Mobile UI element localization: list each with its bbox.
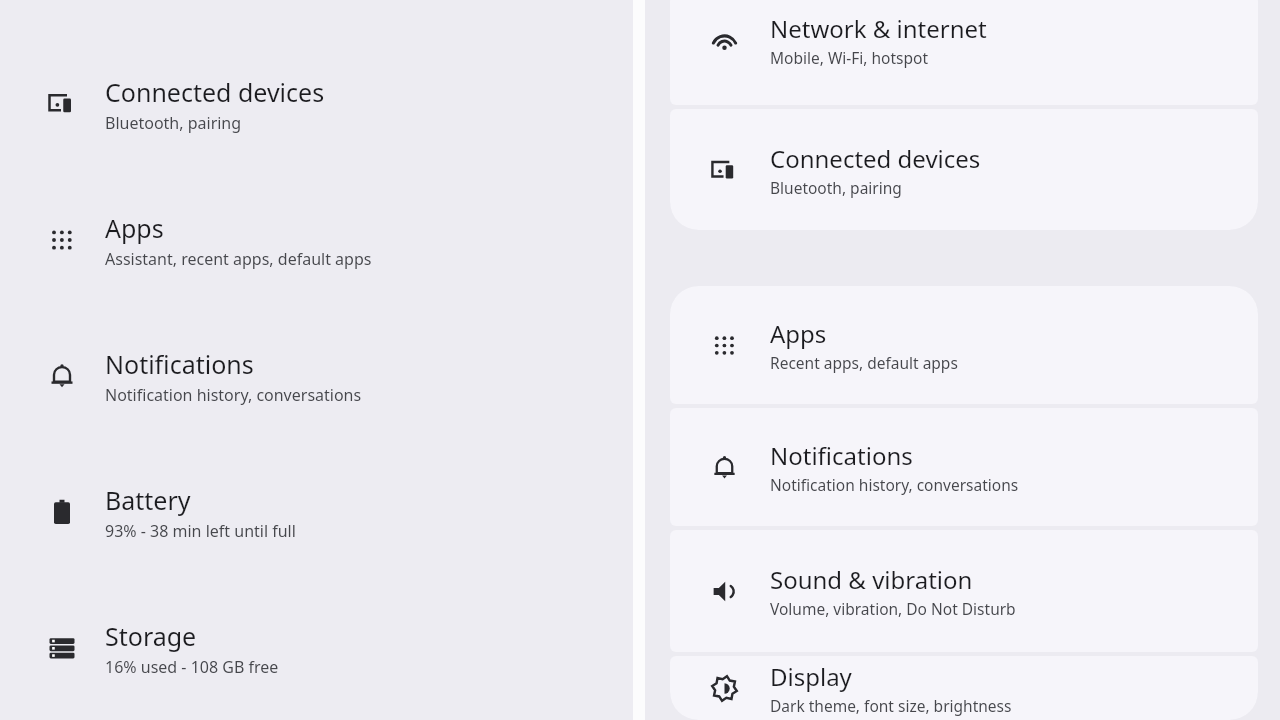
button[interactable]: Connected devices [0,62,633,146]
staticText: Bluetooth, pairing [770,177,902,198]
staticText: 16% used - 108 GB free [105,656,279,678]
staticText: Apps [105,211,164,245]
button[interactable]: Apps [0,198,633,282]
staticText: Mobile, Wi-Fi, hotspot [770,47,929,68]
staticText: Sound & vibration [770,563,973,596]
button[interactable]: Connected devices [670,109,1258,230]
button[interactable]: Apps [670,286,1258,404]
staticText: Network & internet [770,12,987,45]
staticText: Apps [770,317,827,350]
button[interactable]: Notifications [670,408,1258,526]
staticText: Connected devices [770,142,981,175]
staticText: Dark theme, font size, brightness [770,695,1012,716]
staticText: Notification history, conversations [105,384,362,406]
staticText: Notifications [770,439,913,472]
button[interactable]: Network & internet [670,0,1258,105]
staticText: Connected devices [105,75,325,109]
staticText: Volume, vibration, Do Not Disturb [770,598,1016,619]
staticText: Display [770,660,852,693]
staticText: Notifications [105,347,254,381]
button[interactable]: Sound & vibration [670,530,1258,652]
staticText: Assistant, recent apps, default apps [105,248,372,270]
button[interactable]: Battery [0,470,633,554]
staticText: Bluetooth, pairing [105,112,242,134]
staticText: Notification history, conversations [770,474,1019,495]
button[interactable]: Display [670,656,1258,720]
staticText: Storage [105,619,197,653]
staticText: 93% - 38 min left until full [105,520,296,542]
staticText: Recent apps, default apps [770,352,958,373]
button[interactable]: Storage [0,606,633,690]
button[interactable]: Notifications [0,334,633,418]
staticText: Battery [105,483,191,517]
